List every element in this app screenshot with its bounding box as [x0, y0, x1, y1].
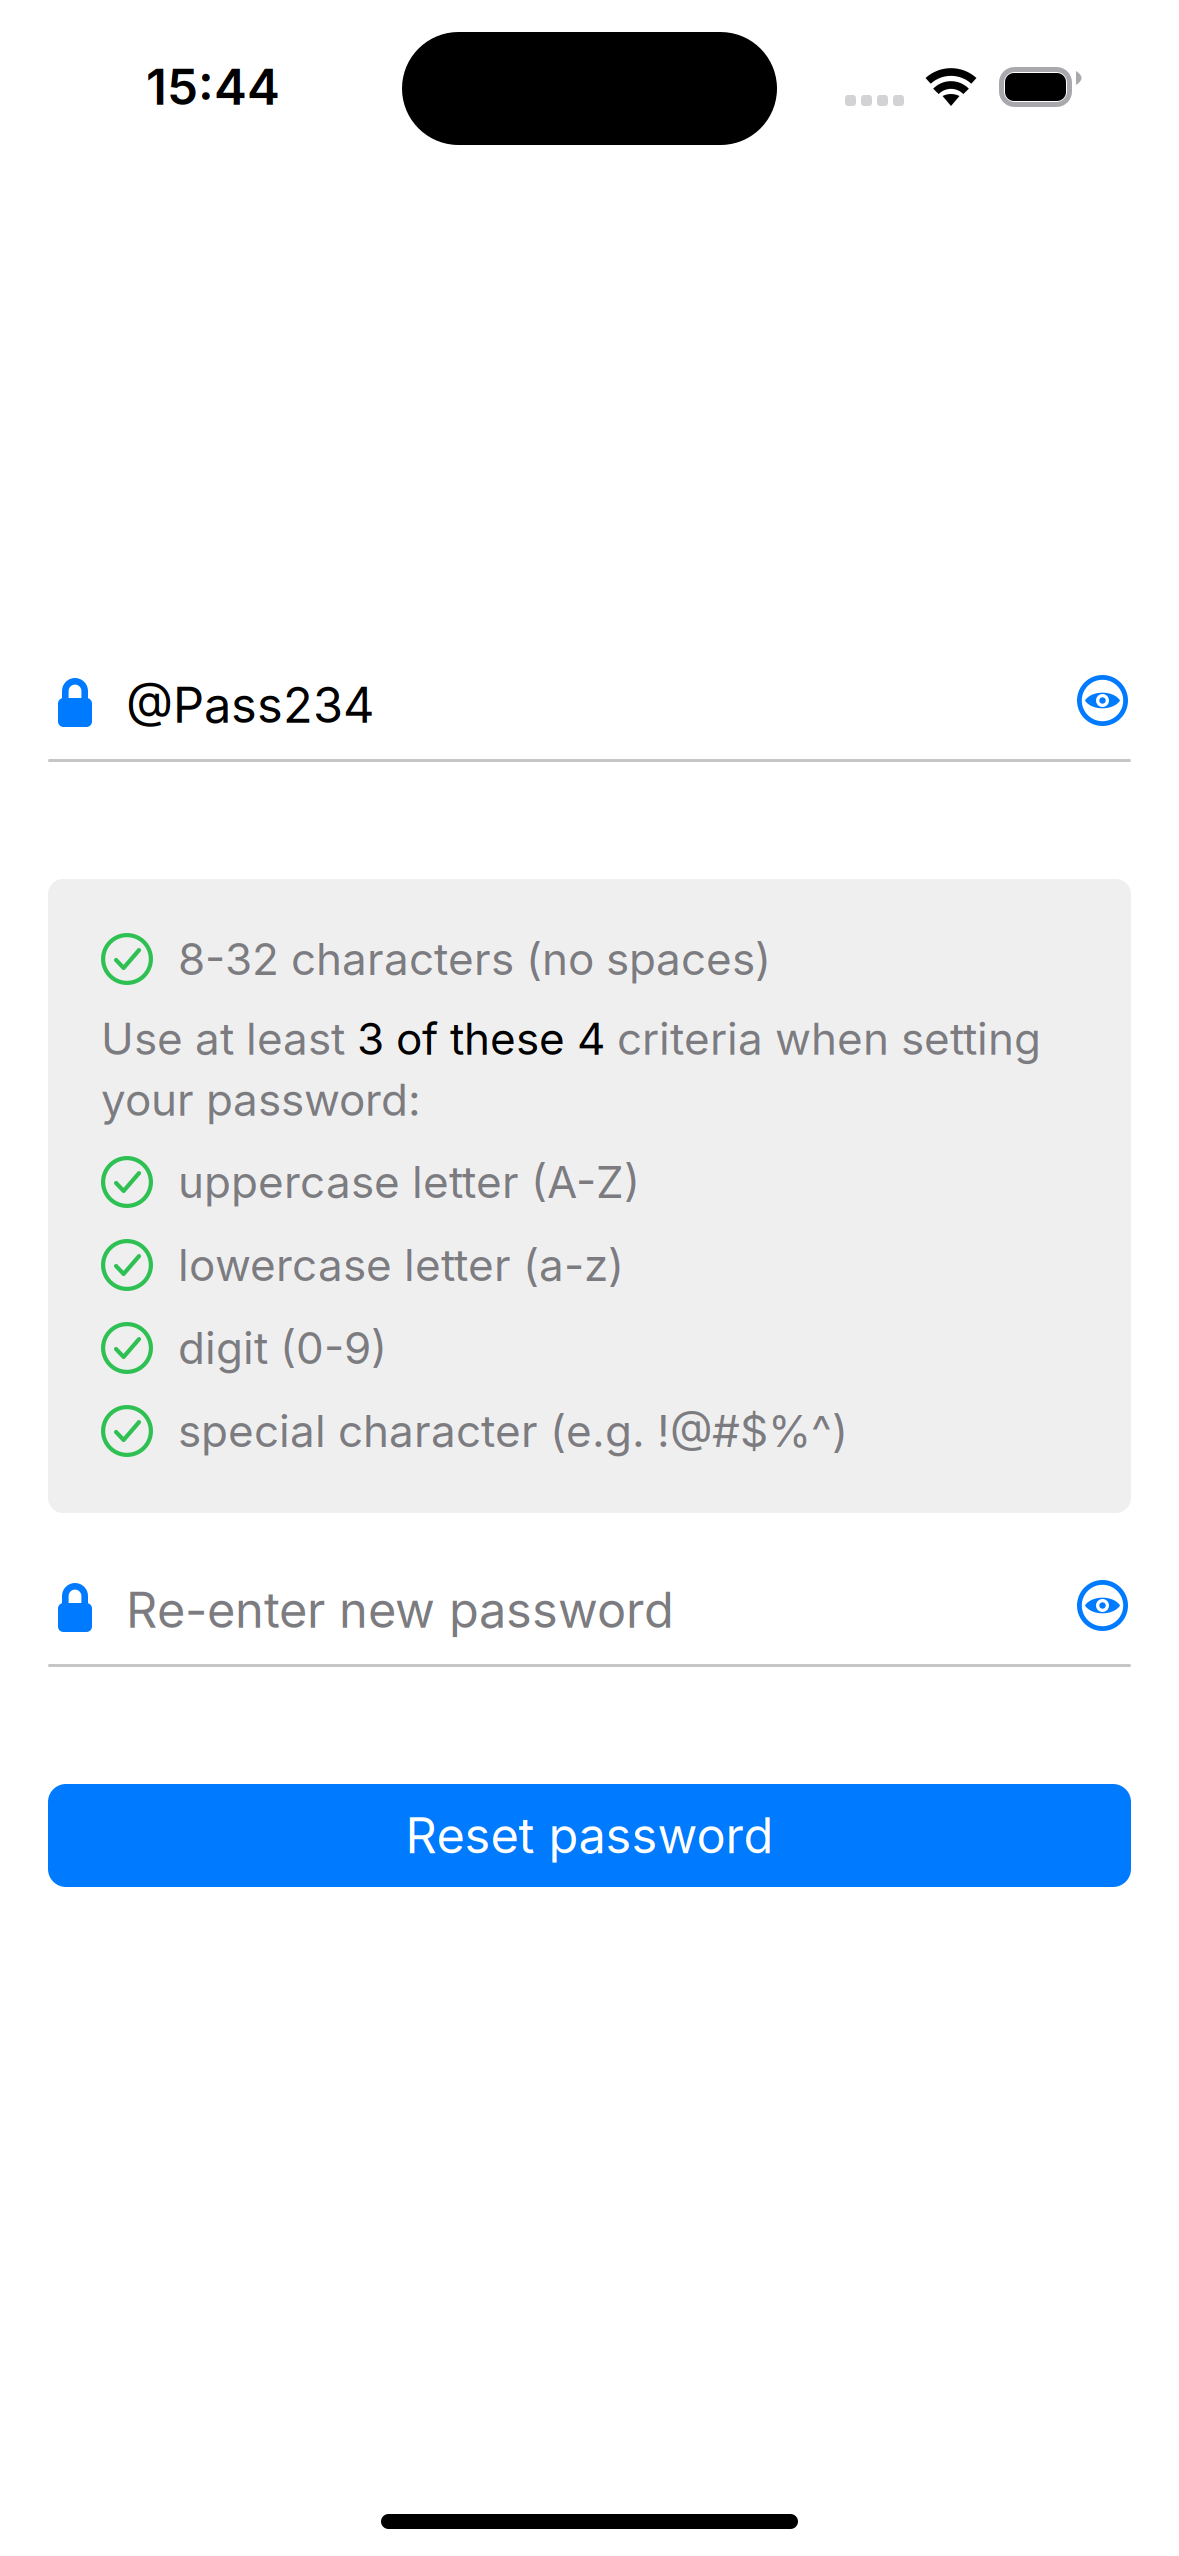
staticText: Reset password	[405, 1806, 773, 1865]
staticText: special character (e.g. !@#$%^)	[178, 1404, 848, 1458]
button[interactable]: Reset password	[48, 1784, 1131, 1887]
button[interactable]: Show password	[1038, 1556, 1179, 1664]
staticText: Re-enter new password	[126, 1581, 674, 1639]
button[interactable]: Show password	[1038, 651, 1179, 759]
staticText: @Pass234	[126, 676, 374, 734]
staticText: uppercase letter (A-Z)	[178, 1155, 640, 1209]
staticText: 8-32 characters (no spaces)	[178, 932, 771, 986]
button[interactable]: @Pass234	[0, 651, 1038, 759]
button[interactable]: Re-enter new password	[0, 1556, 1038, 1664]
staticText: 15:44	[146, 57, 280, 117]
staticText: lowercase letter (a-z)	[178, 1238, 624, 1292]
staticText: Use at least 3 of these 4 criteria when …	[101, 1012, 1041, 1126]
staticText: digit (0-9)	[178, 1321, 387, 1375]
